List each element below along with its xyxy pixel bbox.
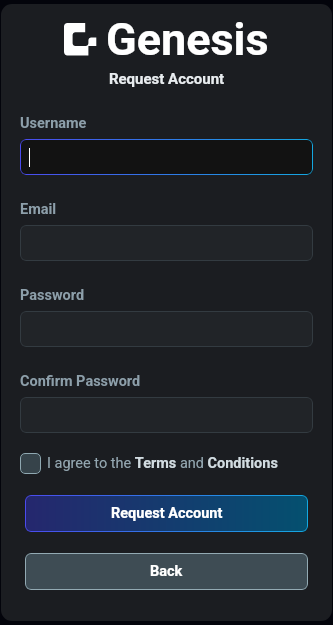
button[interactable]: Password xyxy=(20,311,313,347)
button[interactable]: Username xyxy=(20,139,313,175)
staticText: Password xyxy=(20,287,85,304)
button[interactable]: Back xyxy=(25,553,308,590)
staticText: Username xyxy=(20,115,87,132)
staticText: Email xyxy=(20,201,57,218)
staticText: Request Account xyxy=(111,505,223,522)
staticText: I agree to the Terms and Conditions xyxy=(47,455,278,472)
button[interactable]: Confirm Password xyxy=(20,397,313,433)
button[interactable]: Agree to terms xyxy=(20,453,278,474)
staticText: Back xyxy=(150,563,183,580)
staticText: Request Account xyxy=(1,70,332,88)
staticText: Confirm Password xyxy=(20,373,141,390)
other: Agree to terms xyxy=(20,453,41,474)
button[interactable]: Request Account xyxy=(25,495,308,532)
staticText: Genesis xyxy=(106,13,269,66)
button[interactable]: Email xyxy=(20,225,313,261)
